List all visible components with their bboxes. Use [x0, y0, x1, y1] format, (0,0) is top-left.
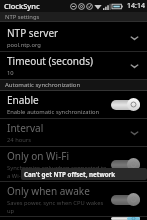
staticText: Can't get NTP offset, network problem! [24, 170, 144, 178]
staticText: Only on Wi-Fi [7, 149, 69, 163]
button[interactable]: Timeout (seconds) [0, 52, 147, 79]
staticText: Enable [7, 93, 39, 107]
staticText: Synchronize only when connected to a Wi-… [7, 164, 108, 180]
button[interactable]: Only when awake [0, 182, 147, 216]
staticText: Automatic synchronization [5, 81, 81, 89]
other: Expand [129, 62, 140, 70]
staticText: Only when awake [7, 184, 90, 198]
staticText: pool.ntp.org [7, 41, 41, 49]
staticText: Timeout (seconds) [7, 54, 93, 68]
staticText: 24 hours [7, 136, 31, 144]
other: Expand [129, 34, 140, 42]
other: Expand [129, 129, 140, 137]
staticText: Interval [7, 121, 44, 135]
staticText: Saves power, sync when CPU wakes up [7, 199, 108, 215]
staticText: NTP server [7, 26, 59, 40]
button[interactable]: Toggle [111, 98, 140, 111]
button[interactable]: Toggle [111, 217, 140, 220]
button[interactable]: Toggle [111, 193, 140, 206]
button[interactable]: Only on Wi-Fi [0, 147, 147, 181]
button[interactable]: Show notification [0, 217, 147, 220]
button[interactable]: Toggle [111, 158, 140, 171]
staticText: NTP settings [5, 13, 40, 21]
staticText: Enable automatic synchronization [7, 108, 100, 116]
button[interactable]: Enable [0, 91, 147, 118]
button[interactable]: NTP settings [0, 12, 147, 21]
button[interactable]: NTP server [0, 24, 147, 51]
staticText: 14:14 [127, 1, 145, 11]
button[interactable]: Interval [0, 119, 147, 146]
staticText: 10 [7, 69, 14, 77]
staticText: ClockSync [4, 1, 40, 11]
